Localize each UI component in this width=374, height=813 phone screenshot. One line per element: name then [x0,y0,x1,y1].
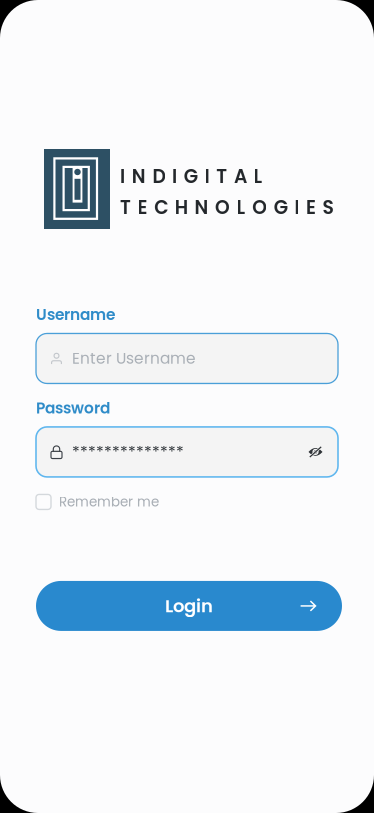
staticText: G [184,163,198,189]
staticText: I [294,194,299,221]
staticText: A [234,163,247,189]
staticText: T [216,163,227,189]
staticText: G [274,194,288,221]
staticText: H [175,194,188,221]
staticText: Remember me [59,493,159,511]
staticText: I [172,163,177,189]
staticText: Username [36,304,115,325]
staticText: T [120,194,131,221]
staticText: O [215,194,230,221]
staticText: E [306,194,316,221]
staticText: S [323,194,334,221]
button[interactable]: Login [36,581,342,631]
staticText: N [132,163,146,189]
staticText: Enter Username [72,348,196,369]
staticText: I [120,163,125,189]
staticText: D [152,163,165,189]
staticText: L [254,163,263,189]
button[interactable]: Remember me [36,490,338,514]
button[interactable]: Show password [308,446,323,458]
staticText: Login [165,593,213,618]
staticText: N [194,194,208,221]
staticText: Password [36,397,110,419]
staticText: O [252,194,267,221]
staticText: C [154,194,168,221]
staticText: E [138,194,148,221]
staticText: L [237,194,246,221]
staticText: I [204,163,209,189]
staticText: ************** [72,441,184,463]
